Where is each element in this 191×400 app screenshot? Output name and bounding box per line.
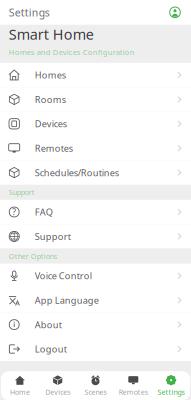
button[interactable]: Devices (0, 112, 191, 136)
staticText: Devices (45, 387, 70, 397)
button[interactable]: Homes (0, 63, 191, 87)
staticText: Support (9, 187, 35, 197)
button[interactable]: About (0, 312, 191, 337)
button[interactable]: Devices (39, 371, 77, 400)
staticText: Schedules/Routines (35, 166, 119, 179)
staticText: Home (10, 387, 30, 397)
staticText: ? (12, 206, 16, 218)
staticText: App Language (35, 294, 99, 306)
button[interactable]: Settings (152, 371, 190, 400)
button[interactable]: Voice Control (0, 264, 191, 288)
button[interactable]: Account (167, 4, 183, 20)
staticText: Settings (158, 387, 185, 397)
button[interactable]: Rooms (0, 87, 191, 112)
button[interactable]: Remotes (114, 371, 152, 400)
staticText: About (35, 318, 62, 331)
staticText: Remotes (119, 387, 148, 397)
staticText: Remotes (35, 142, 73, 154)
staticText: Homes (35, 69, 66, 81)
button[interactable]: Schedules/Routines (0, 160, 191, 185)
button[interactable]: Support (0, 224, 191, 249)
button[interactable]: Home (1, 371, 39, 400)
staticText: Other Options (9, 251, 57, 261)
staticText: Scenes (84, 387, 106, 397)
staticText: Logout (35, 343, 67, 355)
button[interactable]: Scenes (77, 371, 114, 400)
staticText: Smart Home (9, 24, 94, 44)
staticText: Settings (9, 5, 50, 19)
staticText: Support (35, 230, 71, 243)
staticText: Rooms (35, 93, 66, 106)
button[interactable]: Logout (0, 337, 191, 361)
button[interactable]: App Language (0, 288, 191, 312)
staticText: Homes and Devices Configuration (9, 47, 135, 57)
staticText: FAQ (35, 206, 53, 218)
staticText: Voice Control (35, 269, 92, 282)
button[interactable]: ? (0, 200, 191, 224)
staticText: Devices (35, 117, 67, 130)
button[interactable]: Remotes (0, 136, 191, 160)
